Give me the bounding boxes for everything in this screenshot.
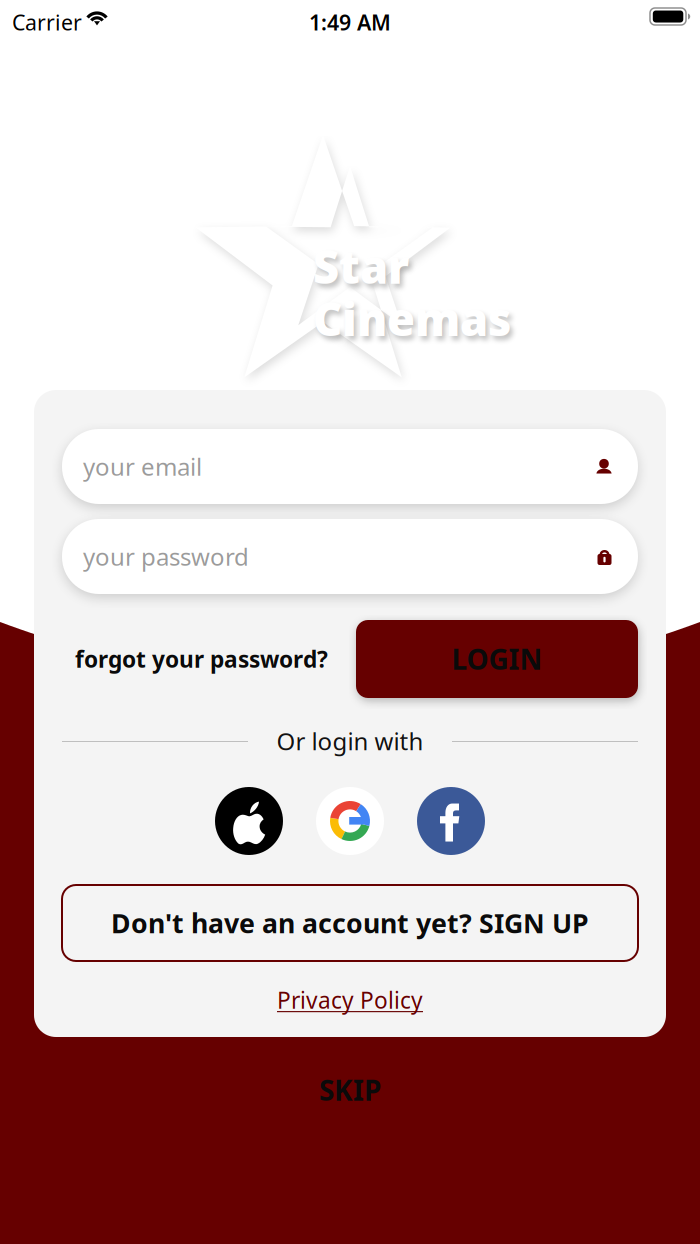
button[interactable]: Sign in with Facebook <box>417 787 485 855</box>
staticText: SKIP <box>319 1071 381 1109</box>
staticText: your email <box>83 451 202 482</box>
button[interactable]: Sign in with Google <box>316 787 384 855</box>
button[interactable]: your email <box>62 429 638 504</box>
staticText: LOGIN <box>451 640 542 678</box>
button[interactable]: forgot your password? <box>75 620 345 698</box>
button[interactable]: Don't have an account yet? SIGN UP <box>62 885 638 961</box>
button[interactable]: LOGIN <box>356 620 638 698</box>
staticText: Don't have an account yet? SIGN UP <box>111 905 589 941</box>
staticText: Privacy Policy <box>277 985 423 1015</box>
staticText: Or login with <box>276 725 423 757</box>
staticText: Carrier <box>12 8 82 36</box>
button[interactable]: SKIP <box>250 1062 450 1118</box>
staticText: 1:49 AM <box>309 8 391 36</box>
button[interactable]: Sign in with Apple <box>215 787 283 855</box>
staticText: forgot your password? <box>75 644 328 674</box>
staticText: Cinemas <box>313 288 511 348</box>
staticText: your password <box>83 541 249 572</box>
staticText: Star <box>313 236 409 296</box>
button[interactable]: Privacy Policy <box>34 980 666 1020</box>
button[interactable]: your password <box>62 519 638 594</box>
